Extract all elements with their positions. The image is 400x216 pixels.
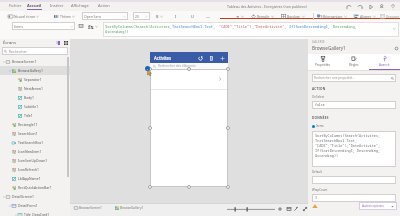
staticText: If(SortDescending1,	[289, 24, 333, 29]
button[interactable]: Aperçu	[365, 2, 376, 11]
staticText: 3	[315, 196, 317, 200]
button[interactable]: B	[156, 11, 163, 21]
button[interactable]: I	[175, 11, 177, 21]
staticText: —	[206, 14, 210, 19]
button[interactable]: Zoom	[227, 205, 275, 213]
button[interactable]: Bordure	[281, 11, 305, 21]
staticText: ≡	[236, 14, 240, 18]
button[interactable]: Aide	[387, 2, 398, 11]
button[interactable]: LblAppName1	[0, 174, 70, 183]
staticText: "CADE";"Title");"DateActivite";	[315, 143, 381, 148]
button[interactable]: Thème	[54, 11, 75, 21]
button[interactable]	[312, 176, 396, 184]
button[interactable]: Trier	[207, 54, 215, 62]
button[interactable]: DetailScreen1	[0, 192, 70, 201]
staticText: DetailForm1	[18, 203, 38, 208]
button[interactable]: Ajuster à l'écran	[285, 205, 292, 212]
button[interactable]: A	[220, 11, 400, 21]
button[interactable]: SearchIcon1	[0, 129, 70, 138]
button[interactable]: Affichage	[71, 2, 89, 11]
button[interactable]	[150, 69, 228, 89]
button[interactable]: IconSortUpDown1	[0, 156, 70, 165]
button[interactable]: TextSearchBox1	[0, 138, 70, 147]
button[interactable]: Rechercher	[2, 47, 68, 55]
staticText: Rechercher	[9, 49, 28, 54]
staticText: false	[315, 103, 325, 107]
staticText: ACTION	[312, 87, 326, 91]
button[interactable]: Nouvel élément	[218, 54, 226, 62]
button[interactable]: Autres options	[359, 202, 397, 210]
button[interactable]: Open Sans	[82, 12, 128, 20]
button[interactable]: BrowseGallery1	[0, 66, 70, 75]
staticText: Thème	[60, 14, 71, 19]
button[interactable]: NextArrow1	[0, 84, 70, 93]
button[interactable]: Separator1	[0, 75, 70, 84]
staticText: "CADE","Title")	[219, 24, 252, 29]
staticText: Règles	[349, 63, 359, 67]
button[interactable]: DetailForm1	[0, 201, 70, 210]
staticText: Fichier	[9, 3, 22, 8]
button[interactable]: Action	[98, 2, 110, 11]
button[interactable]: Propriétés	[308, 54, 338, 70]
button[interactable]: 3	[312, 194, 396, 202]
button[interactable]: Annuler	[343, 2, 354, 11]
staticText: LblAppName1	[18, 176, 41, 181]
button[interactable]: Accueil	[27, 2, 42, 11]
staticText: Affichage	[71, 3, 89, 8]
button[interactable]: Rechercher des éléments	[150, 63, 228, 69]
button[interactable]: fx	[88, 21, 102, 32]
staticText: TextSearchBox1.Text,	[172, 24, 216, 29]
button[interactable]: RectQuickActionBar1	[0, 183, 70, 192]
button[interactable]: Zoom avant	[276, 205, 283, 212]
button[interactable]: Actualiser	[196, 54, 204, 62]
button[interactable]: Rectangle11	[0, 120, 70, 129]
staticText: Nouvel écran	[14, 14, 35, 19]
button[interactable]: SortByColumns(Search(Activites,	[103, 22, 399, 37]
button[interactable]: Rechercher une propriété...	[312, 74, 396, 82]
button[interactable]: Miniatures	[62, 39, 70, 47]
button[interactable]: Insérer	[50, 2, 64, 11]
button[interactable]: Arborescence	[54, 39, 62, 47]
button[interactable]: 20	[133, 12, 150, 20]
button[interactable]: Réorganiser	[317, 11, 347, 21]
button[interactable]: Items	[12, 22, 75, 30]
button[interactable]: Title1	[0, 111, 70, 120]
button[interactable]: Règles	[338, 54, 369, 70]
button[interactable]: Rétablir	[354, 2, 365, 11]
button[interactable]: Grouper	[380, 11, 400, 21]
button[interactable]: false	[312, 101, 396, 109]
button[interactable]: U	[191, 11, 194, 21]
staticText: DONNÉES	[312, 116, 329, 120]
button[interactable]: Activites	[150, 52, 228, 63]
button[interactable]: BrowseScreen1	[0, 57, 70, 66]
button[interactable]: Aligner	[354, 11, 376, 21]
staticText: B	[156, 14, 159, 19]
button[interactable]: Remplir	[251, 11, 274, 21]
staticText: Grouper	[386, 14, 400, 19]
staticText: Autres options	[362, 204, 384, 208]
button[interactable]: Body1	[0, 93, 70, 102]
button[interactable]: Subtitle1	[0, 102, 70, 111]
staticText: WrapCount	[312, 188, 328, 192]
button[interactable]: SortByColumns(Search(Activites;	[312, 131, 396, 167]
button[interactable]: Fermer le volet	[393, 45, 399, 51]
button[interactable]: BrowseGallery1	[114, 206, 145, 210]
button[interactable]: Partager	[376, 2, 387, 11]
staticText: OnSelect	[312, 95, 325, 99]
button[interactable]: BrowseScreen1	[73, 206, 103, 210]
button[interactable]: Title_DataCard1	[0, 210, 70, 216]
button[interactable]: Fichier	[9, 2, 22, 11]
button[interactable]: IconNewItem1	[0, 147, 70, 156]
button[interactable]: Réinitialiser	[292, 205, 299, 212]
button[interactable]: Avancé	[369, 54, 400, 70]
button[interactable]: IconRefresh1	[0, 165, 70, 174]
button[interactable]: Plein écran	[301, 205, 308, 212]
button[interactable]: ≡	[236, 11, 244, 21]
button[interactable]: Nouvel écran	[8, 11, 39, 21]
staticText: Activites	[154, 55, 172, 61]
staticText: BrowseScreen1	[79, 206, 102, 210]
button[interactable]: —	[206, 11, 210, 21]
button[interactable]: Afficher la liste	[77, 22, 85, 30]
staticText: Insérer	[50, 3, 64, 8]
staticText: Réorganiser	[323, 14, 343, 19]
